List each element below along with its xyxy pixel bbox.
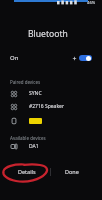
button[interactable]: Bluetooth on bbox=[79, 55, 92, 61]
staticText: SYNC bbox=[29, 90, 42, 97]
button[interactable]: On bbox=[0, 50, 102, 66]
staticText: Available devices bbox=[10, 135, 46, 141]
button[interactable]: #2716 Speaker bbox=[0, 100, 102, 113]
button[interactable]: Details bbox=[14, 165, 40, 177]
staticText: DA1 bbox=[29, 143, 39, 150]
button[interactable]: Done bbox=[60, 165, 84, 177]
staticText: On bbox=[10, 54, 19, 62]
button[interactable]: DA1 bbox=[0, 140, 102, 153]
button[interactable]: SYNC bbox=[0, 87, 102, 100]
staticText: 46% bbox=[87, 0, 96, 6]
staticText: Bluetooth bbox=[28, 28, 68, 40]
staticText: Done bbox=[65, 168, 79, 175]
staticText: Details bbox=[18, 168, 36, 175]
staticText: Paired devices bbox=[10, 79, 41, 85]
button[interactable] bbox=[0, 114, 102, 127]
staticText: #2716 Speaker bbox=[29, 103, 64, 110]
